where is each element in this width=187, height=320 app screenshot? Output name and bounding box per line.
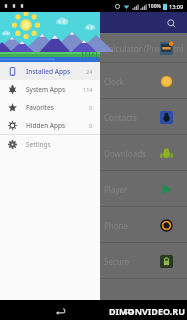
staticText: 0 (89, 122, 93, 129)
staticText: Phone (104, 220, 129, 231)
button[interactable]: Favorites (0, 98, 100, 116)
staticText: Secure (104, 256, 130, 267)
button[interactable]: Hidden Apps (0, 116, 100, 134)
button[interactable]: Home (111, 300, 145, 320)
button[interactable]: Clock (0, 63, 187, 99)
button[interactable]: Player (0, 171, 187, 207)
button[interactable]: Back (43, 300, 77, 320)
staticText: 0 (89, 104, 93, 111)
staticText: Settings (26, 140, 100, 149)
staticText: Installed Apps (26, 67, 86, 76)
button[interactable]: System Apps (0, 80, 100, 98)
staticText: 13:09 (169, 3, 184, 10)
staticText: Hidden Apps (26, 121, 89, 130)
staticText: Calculator (Premium) (104, 43, 184, 54)
button[interactable]: Calculator (Premium) (0, 33, 187, 63)
staticText: Player (104, 184, 128, 195)
staticText: DIMONVIDEO.RU (109, 305, 185, 317)
staticText: Contacts (104, 112, 137, 123)
button[interactable]: Phone (0, 207, 187, 243)
staticText: Favorites (26, 103, 89, 112)
button[interactable]: Secure (0, 243, 187, 279)
button[interactable]: Contacts (0, 99, 187, 135)
staticText: Downloads (104, 148, 146, 159)
button[interactable]: Search (163, 15, 179, 31)
button[interactable]: Installed Apps (0, 62, 100, 80)
button[interactable]: Settings (0, 135, 100, 153)
staticText: 24 (86, 68, 93, 75)
staticText: Clock (104, 76, 125, 87)
staticText: 114 (83, 86, 93, 93)
button[interactable]: Downloads (0, 135, 187, 171)
staticText: System Apps (26, 85, 83, 94)
staticText: 100% (148, 3, 161, 10)
